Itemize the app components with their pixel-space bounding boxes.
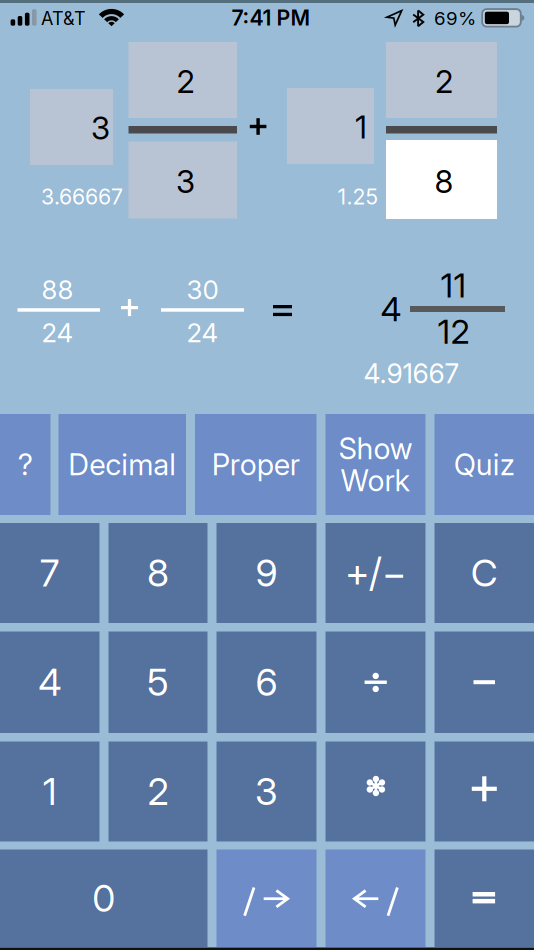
button[interactable]: 4: [0, 631, 99, 733]
button[interactable]: Move to numerator: [325, 849, 425, 947]
staticText: 3.66667: [41, 184, 123, 210]
button[interactable]: ?: [0, 414, 50, 515]
staticText: 2: [147, 769, 168, 814]
button[interactable]: Minus: [434, 631, 534, 733]
button[interactable]: Show: [325, 414, 425, 515]
staticText: 1: [43, 769, 57, 814]
staticText: 8: [147, 550, 169, 596]
button[interactable]: 8: [108, 523, 207, 623]
button[interactable]: Multiply: [325, 741, 425, 841]
staticText: Show: [338, 431, 412, 466]
button[interactable]: Denominator, second operand, selected: [386, 140, 497, 219]
staticText: 5: [147, 660, 169, 705]
button[interactable]: 2: [108, 741, 207, 841]
button[interactable]: Plus: [434, 741, 534, 841]
staticText: 7: [40, 550, 60, 596]
button[interactable]: Numerator, second operand: [386, 42, 497, 118]
button[interactable]: 3: [216, 741, 316, 841]
staticText: 4: [38, 660, 61, 705]
staticText: 3: [91, 109, 110, 147]
button[interactable]: Equals: [434, 849, 534, 947]
button[interactable]: 7: [0, 523, 99, 623]
staticText: 24: [186, 317, 218, 348]
staticText: 30: [186, 274, 218, 305]
staticText: 8: [434, 162, 453, 200]
button[interactable]: 0: [0, 849, 207, 947]
button[interactable]: Divide: [325, 631, 425, 733]
staticText: AT&T: [41, 8, 86, 29]
staticText: 2: [176, 62, 194, 100]
staticText: 4: [380, 289, 401, 329]
button[interactable]: Decimal: [58, 414, 186, 515]
button[interactable]: Whole number, first operand: [30, 89, 113, 165]
staticText: 24: [42, 317, 74, 348]
staticText: 7:41 PM: [231, 5, 310, 31]
staticText: Decimal: [68, 447, 176, 482]
staticText: 3: [255, 769, 278, 814]
button[interactable]: 1: [0, 741, 99, 841]
staticText: +/−: [345, 550, 406, 596]
staticText: 12: [437, 311, 469, 352]
button[interactable]: 6: [216, 631, 316, 733]
button[interactable]: Whole number, second operand: [287, 88, 374, 164]
staticText: 0: [92, 876, 115, 921]
button[interactable]: Quiz: [434, 414, 534, 515]
staticText: 9: [255, 550, 277, 596]
button[interactable]: Denominator, first operand: [128, 141, 237, 218]
staticText: ?: [18, 447, 33, 482]
staticText: 1.25: [337, 184, 378, 210]
staticText: Proper: [212, 447, 300, 482]
button[interactable]: +/−: [325, 523, 425, 623]
button[interactable]: Move to denominator: [216, 849, 316, 947]
staticText: 4.91667: [363, 357, 459, 390]
staticText: 2: [435, 62, 453, 100]
staticText: Work: [340, 463, 410, 498]
staticText: 1: [355, 108, 367, 146]
staticText: C: [471, 550, 498, 596]
staticText: 6: [255, 660, 277, 705]
button[interactable]: Proper: [195, 414, 316, 515]
staticText: 3: [176, 162, 195, 200]
button[interactable]: Numerator, first operand: [128, 42, 237, 118]
staticText: 88: [42, 274, 74, 305]
staticText: 11: [440, 265, 466, 305]
staticText: 69%: [434, 7, 476, 30]
button[interactable]: 9: [216, 523, 316, 623]
button[interactable]: C: [434, 523, 534, 623]
button[interactable]: 5: [108, 631, 207, 733]
staticText: Quiz: [454, 447, 515, 482]
